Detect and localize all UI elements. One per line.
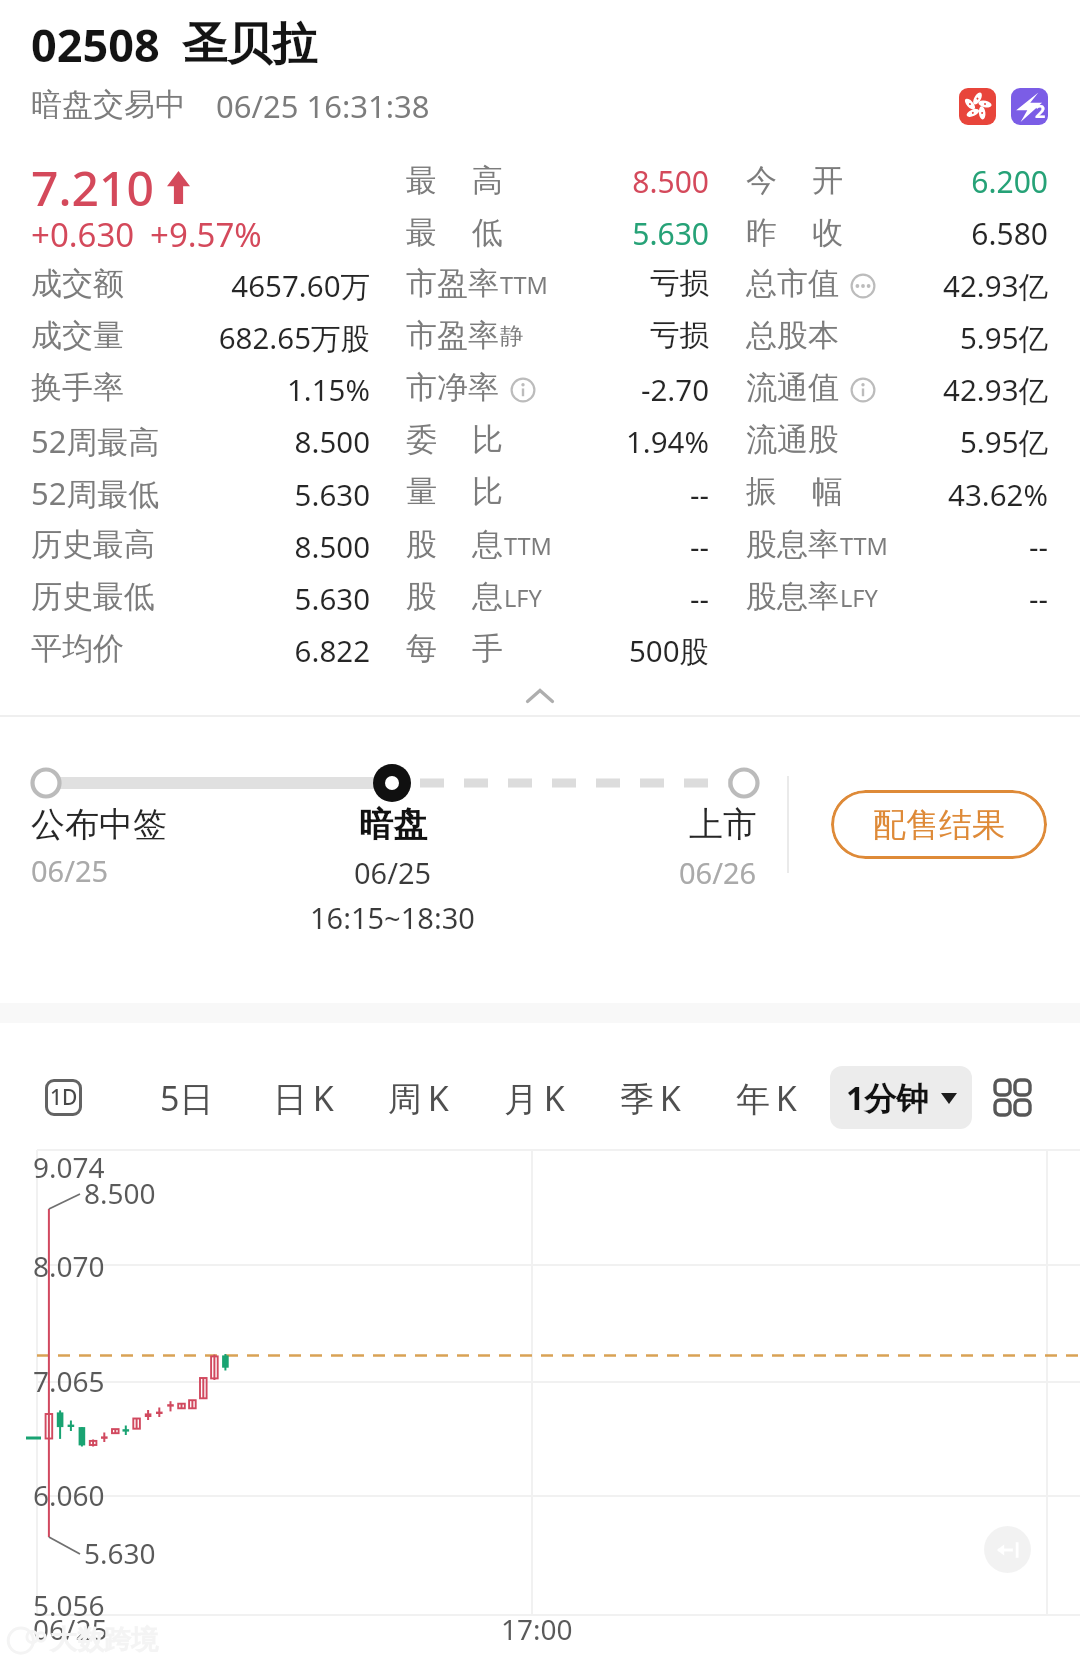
staticText: -- [828, 526, 1048, 566]
staticText: 市净率 [406, 368, 499, 407]
staticText: 06/25 16:31:38 [216, 85, 430, 127]
staticText: 历史最低 [31, 577, 155, 616]
staticText: 6.060 [33, 1476, 105, 1514]
staticText: 暗盘 [359, 803, 427, 846]
staticText: 5日 [160, 1075, 214, 1121]
staticText: -- [828, 578, 1048, 618]
staticText: 总股本 [746, 316, 839, 355]
button[interactable]: Hong Kong market [959, 88, 996, 125]
staticText: 上市 [689, 803, 757, 846]
staticText: 682.65万股 [150, 317, 370, 357]
staticText: 比 [472, 472, 503, 511]
button[interactable]: 配售结果 [831, 790, 1047, 859]
staticText: 成交额 [31, 264, 124, 303]
staticText: 1.15% [150, 369, 370, 409]
staticText: 06/26 [679, 853, 757, 892]
staticText: 大数跨境 [50, 1623, 158, 1657]
staticText: 6.580 [868, 213, 1048, 254]
staticText: 年 K [736, 1075, 797, 1121]
button[interactable]: Scroll chart left [984, 1526, 1031, 1573]
button[interactable]: 1分钟 [830, 1066, 972, 1129]
staticText: TTM [840, 530, 888, 562]
button[interactable]: About 市净率 [510, 377, 536, 403]
staticText: 42.93亿 [828, 265, 1048, 305]
staticText: 16:15~18:30 [310, 898, 475, 937]
staticText: 亏损 [489, 265, 709, 302]
staticText: 流通值 [746, 368, 839, 407]
button[interactable]: One day chart [45, 1079, 82, 1116]
button[interactable]: 02508 [31, 14, 317, 75]
staticText: 配售结果 [873, 804, 1005, 846]
staticText: 500股 [489, 630, 709, 670]
button[interactable]: About 流通值 [850, 377, 876, 403]
staticText: 最 [406, 161, 437, 200]
button[interactable]: Collapse details [440, 678, 640, 714]
staticText: -2.70 [489, 369, 709, 409]
staticText: 9.074 [33, 1148, 105, 1186]
staticText: 开 [812, 161, 843, 200]
staticText: TTM [504, 530, 552, 562]
button[interactable]: 年 K [708, 1062, 824, 1134]
staticText: +9.57% [150, 212, 262, 257]
staticText: 量 [406, 472, 437, 511]
button[interactable]: 月 K [476, 1062, 592, 1134]
staticText: 总市值 [746, 264, 839, 303]
staticText: 亏损 [489, 317, 709, 354]
staticText: LFY [840, 582, 878, 614]
staticText: 历史最高 [31, 525, 155, 564]
staticText: 52周最高 [31, 420, 160, 462]
staticText: 5.95亿 [828, 421, 1048, 461]
staticText: 每 [406, 629, 437, 668]
staticText: 市盈率 [406, 264, 499, 303]
staticText: 成交量 [31, 316, 124, 355]
staticText: 8.500 [150, 421, 370, 461]
button[interactable]: 上市 [600, 800, 757, 892]
staticText: -- [489, 526, 709, 566]
staticText: 8.500 [529, 161, 709, 202]
button[interactable]: 季 K [592, 1062, 708, 1134]
staticText: 06/25 [31, 851, 109, 890]
staticText: +0.630 [31, 212, 135, 257]
staticText: 换手率 [31, 368, 124, 407]
staticText: 低 [472, 213, 503, 252]
staticText: 1分钟 [846, 1076, 929, 1120]
staticText: TTM [500, 269, 548, 301]
staticText: 8.500 [84, 1174, 156, 1212]
staticText: 1D [50, 1083, 78, 1112]
staticText: 43.62% [828, 474, 1048, 514]
staticText: 7.210 [31, 155, 154, 220]
staticText: LFY [504, 582, 542, 614]
button[interactable]: 5日 [129, 1062, 245, 1134]
staticText: -- [489, 578, 709, 618]
staticText: 委 [406, 420, 437, 459]
staticText: 振 [746, 472, 777, 511]
staticText: 5.056 [33, 1586, 105, 1624]
staticText: 4657.60万 [150, 265, 370, 305]
staticText: 06/25 [33, 1610, 108, 1648]
staticText: 比 [472, 420, 503, 459]
staticText: 6.822 [150, 630, 370, 670]
staticText: 月 K [504, 1075, 565, 1121]
staticText: 6.200 [868, 161, 1048, 202]
staticText: 日 K [273, 1075, 334, 1121]
staticText: 收 [812, 213, 843, 252]
staticText: 5.630 [84, 1534, 156, 1572]
staticText: 1.94% [489, 421, 709, 461]
staticText: 42.93亿 [828, 369, 1048, 409]
button[interactable]: 暗盘 [242, 800, 542, 950]
staticText: 17:00 [501, 1610, 573, 1648]
staticText: 圣贝拉 [182, 16, 317, 73]
staticText: 52周最低 [31, 472, 160, 514]
staticText: 幅 [812, 472, 843, 511]
staticText: 5.630 [529, 213, 709, 254]
button[interactable]: More about 总市值 [850, 273, 876, 299]
staticText: 06/25 [354, 853, 432, 892]
button[interactable]: 周 K [360, 1062, 476, 1134]
button[interactable]: Level 2 quotes [1011, 88, 1048, 125]
staticText: 7.065 [33, 1362, 105, 1400]
button[interactable]: Chart layout options [995, 1080, 1030, 1115]
button[interactable]: 日 K [245, 1062, 361, 1134]
staticText: 公布中签 [31, 803, 167, 846]
staticText: 市盈率 [406, 316, 499, 355]
button[interactable]: 公布中签 [20, 800, 230, 892]
